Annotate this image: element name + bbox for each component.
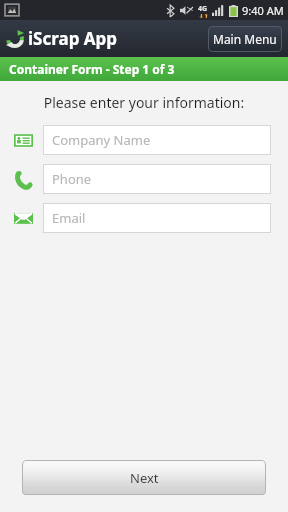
staticText: 9:40 AM bbox=[242, 3, 284, 18]
button[interactable]: Next bbox=[22, 460, 266, 495]
staticText: Main Menu bbox=[213, 31, 277, 47]
staticText: Please enter your information: bbox=[0, 93, 288, 112]
button[interactable]: Email bbox=[43, 203, 271, 233]
staticText: Company Name bbox=[52, 131, 151, 149]
button[interactable]: Phone bbox=[43, 164, 271, 194]
staticText: Email bbox=[52, 209, 86, 227]
staticText: Next bbox=[130, 469, 159, 487]
other: Company name bbox=[14, 131, 33, 150]
button[interactable]: Company Name bbox=[43, 125, 271, 155]
other: Email bbox=[14, 209, 33, 228]
button[interactable]: Main Menu bbox=[208, 26, 282, 52]
staticText: iScrap App bbox=[28, 27, 118, 50]
staticText: Phone bbox=[52, 170, 92, 188]
staticText: Container Form - Step 1 of 3 bbox=[9, 61, 175, 77]
staticText: 4G bbox=[198, 4, 208, 14]
other: Phone bbox=[14, 170, 33, 189]
